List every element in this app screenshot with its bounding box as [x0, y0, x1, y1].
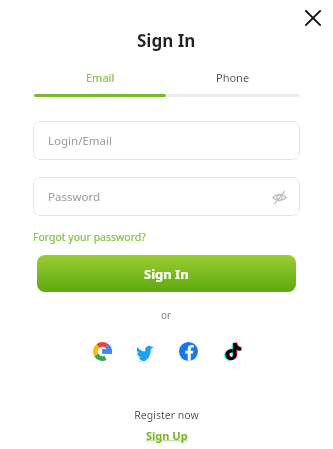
button[interactable]: Email	[34, 70, 166, 97]
button[interactable]: Show password	[267, 185, 291, 209]
staticText: Email	[86, 70, 115, 85]
button[interactable]: Sign in with Twitter	[129, 335, 161, 367]
button[interactable]: Password	[33, 177, 300, 216]
staticText: Sign In	[144, 265, 189, 283]
button[interactable]: Sign In	[37, 255, 296, 292]
staticText: or	[161, 308, 172, 322]
button[interactable]: Forgot your password?	[33, 230, 146, 244]
staticText: Login/Email	[48, 133, 112, 149]
staticText: Password	[48, 189, 101, 205]
button[interactable]: Sign in with TikTok	[215, 335, 247, 367]
button[interactable]: Sign in with Facebook	[172, 335, 204, 367]
button[interactable]: Sign Up	[146, 428, 188, 443]
button[interactable]: Login/Email	[33, 121, 300, 160]
button[interactable]: Close	[299, 4, 327, 32]
button[interactable]: Sign in with Google	[86, 335, 118, 367]
staticText: Sign Up	[146, 428, 188, 443]
staticText: Phone	[216, 70, 250, 85]
staticText: Sign In	[137, 29, 196, 52]
staticText: Register now	[134, 408, 199, 422]
button[interactable]: Phone	[166, 70, 299, 97]
